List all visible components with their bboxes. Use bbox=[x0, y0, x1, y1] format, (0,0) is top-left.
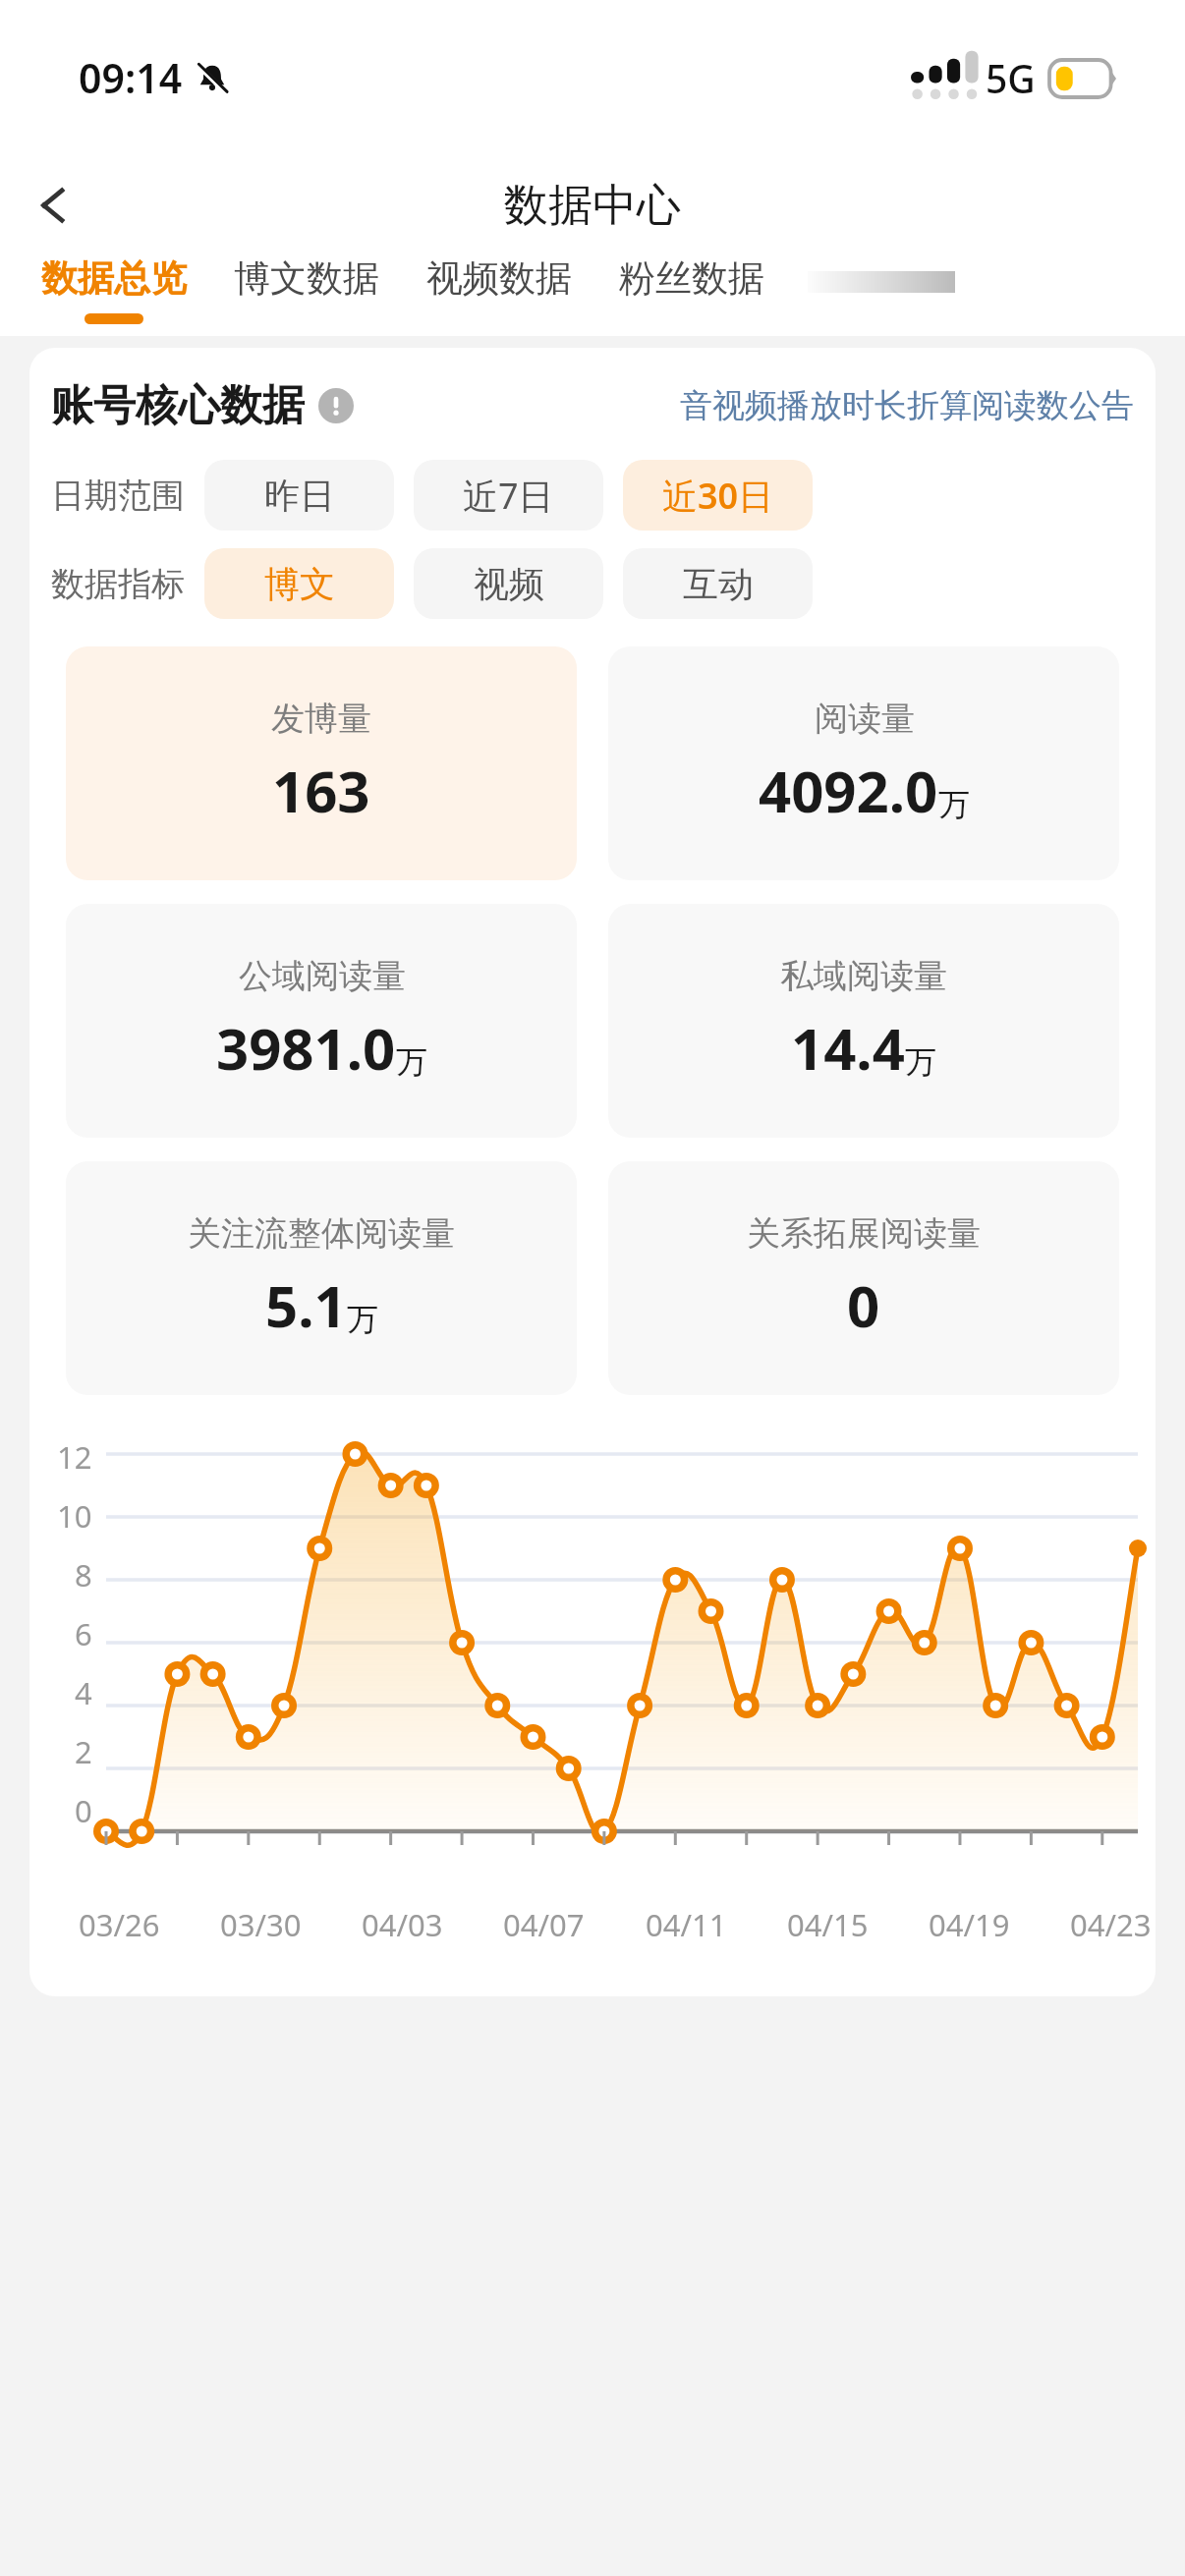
staticText: 04/07 bbox=[503, 1904, 585, 1945]
staticText: 近7日 bbox=[463, 472, 554, 520]
staticText: 万 bbox=[347, 1300, 378, 1339]
staticText: 3981.0 bbox=[216, 1009, 396, 1087]
button[interactable]: Back bbox=[12, 163, 96, 248]
button[interactable]: 视频数据 bbox=[403, 255, 595, 313]
staticText: 4092.0 bbox=[759, 752, 938, 829]
staticText: 6 bbox=[75, 1613, 92, 1654]
button[interactable]: 音视频播放时长折算阅读数公告 bbox=[680, 385, 1134, 426]
staticText: 04/03 bbox=[362, 1904, 443, 1945]
staticText: 昨日 bbox=[264, 474, 335, 518]
button[interactable]: 关注流整体阅读量 bbox=[66, 1161, 577, 1395]
staticText: 万 bbox=[905, 1042, 936, 1082]
staticText: 发博量 bbox=[271, 698, 371, 740]
staticText: 数据总览 bbox=[41, 255, 187, 302]
staticText: 视频 bbox=[474, 562, 544, 606]
staticText: 5G bbox=[986, 52, 1036, 104]
staticText: 04/11 bbox=[646, 1904, 727, 1945]
staticText: 关注流整体阅读量 bbox=[188, 1212, 455, 1255]
button[interactable]: 博文 bbox=[204, 548, 394, 619]
button[interactable]: 互动 bbox=[623, 548, 813, 619]
staticText: 粉丝数据 bbox=[619, 255, 764, 302]
button[interactable]: 关系拓展阅读量 bbox=[608, 1161, 1119, 1395]
staticText: 万 bbox=[396, 1042, 427, 1082]
staticText: 私域阅读量 bbox=[780, 955, 947, 997]
staticText: 万 bbox=[938, 785, 970, 824]
staticText: 关系拓展阅读量 bbox=[747, 1212, 981, 1255]
staticText: 日期范围 bbox=[51, 475, 185, 517]
button[interactable]: 粉丝数据 bbox=[595, 255, 788, 313]
staticText: 2 bbox=[75, 1731, 92, 1772]
staticText: 阅读量 bbox=[815, 698, 915, 740]
staticText: 04/23 bbox=[1070, 1904, 1152, 1945]
staticText: 163 bbox=[272, 752, 370, 829]
button[interactable]: 阅读量 bbox=[608, 646, 1119, 880]
staticText: 4 bbox=[75, 1672, 92, 1713]
staticText: 14.4 bbox=[791, 1009, 905, 1087]
staticText: 09:14 bbox=[79, 50, 183, 105]
button[interactable]: 公域阅读量 bbox=[66, 904, 577, 1138]
button[interactable]: 私域阅读量 bbox=[608, 904, 1119, 1138]
button[interactable]: 发博量 bbox=[66, 646, 577, 880]
staticText: 03/26 bbox=[79, 1904, 160, 1945]
button[interactable]: 近7日 bbox=[414, 460, 603, 531]
staticText: 互动 bbox=[683, 562, 754, 606]
button[interactable]: 昨日 bbox=[204, 460, 394, 531]
staticText: 公域阅读量 bbox=[239, 955, 406, 997]
staticText: 0 bbox=[847, 1266, 880, 1344]
button[interactable]: 博文数据 bbox=[210, 255, 403, 313]
staticText: 8 bbox=[75, 1554, 92, 1596]
button[interactable] bbox=[808, 271, 955, 293]
button[interactable]: 视频 bbox=[414, 548, 603, 619]
staticText: 0 bbox=[75, 1790, 92, 1831]
staticText: 03/30 bbox=[220, 1904, 302, 1945]
staticText: 博文 bbox=[264, 562, 335, 606]
staticText: 04/19 bbox=[929, 1904, 1010, 1945]
staticText: 近30日 bbox=[662, 472, 774, 520]
staticText: 04/15 bbox=[787, 1904, 869, 1945]
staticText: 5.1 bbox=[265, 1266, 347, 1344]
staticText: 视频数据 bbox=[426, 255, 572, 302]
staticText: 数据指标 bbox=[51, 563, 185, 605]
staticText: 10 bbox=[57, 1495, 92, 1537]
button[interactable]: 数据总览 bbox=[18, 255, 210, 324]
staticText: 账号核心数据 bbox=[51, 379, 305, 432]
staticText: 博文数据 bbox=[234, 255, 379, 302]
button[interactable]: Info bbox=[316, 386, 356, 425]
button[interactable]: 近30日 bbox=[623, 460, 813, 531]
staticText: 数据中心 bbox=[504, 178, 681, 234]
staticText: 12 bbox=[57, 1436, 92, 1478]
